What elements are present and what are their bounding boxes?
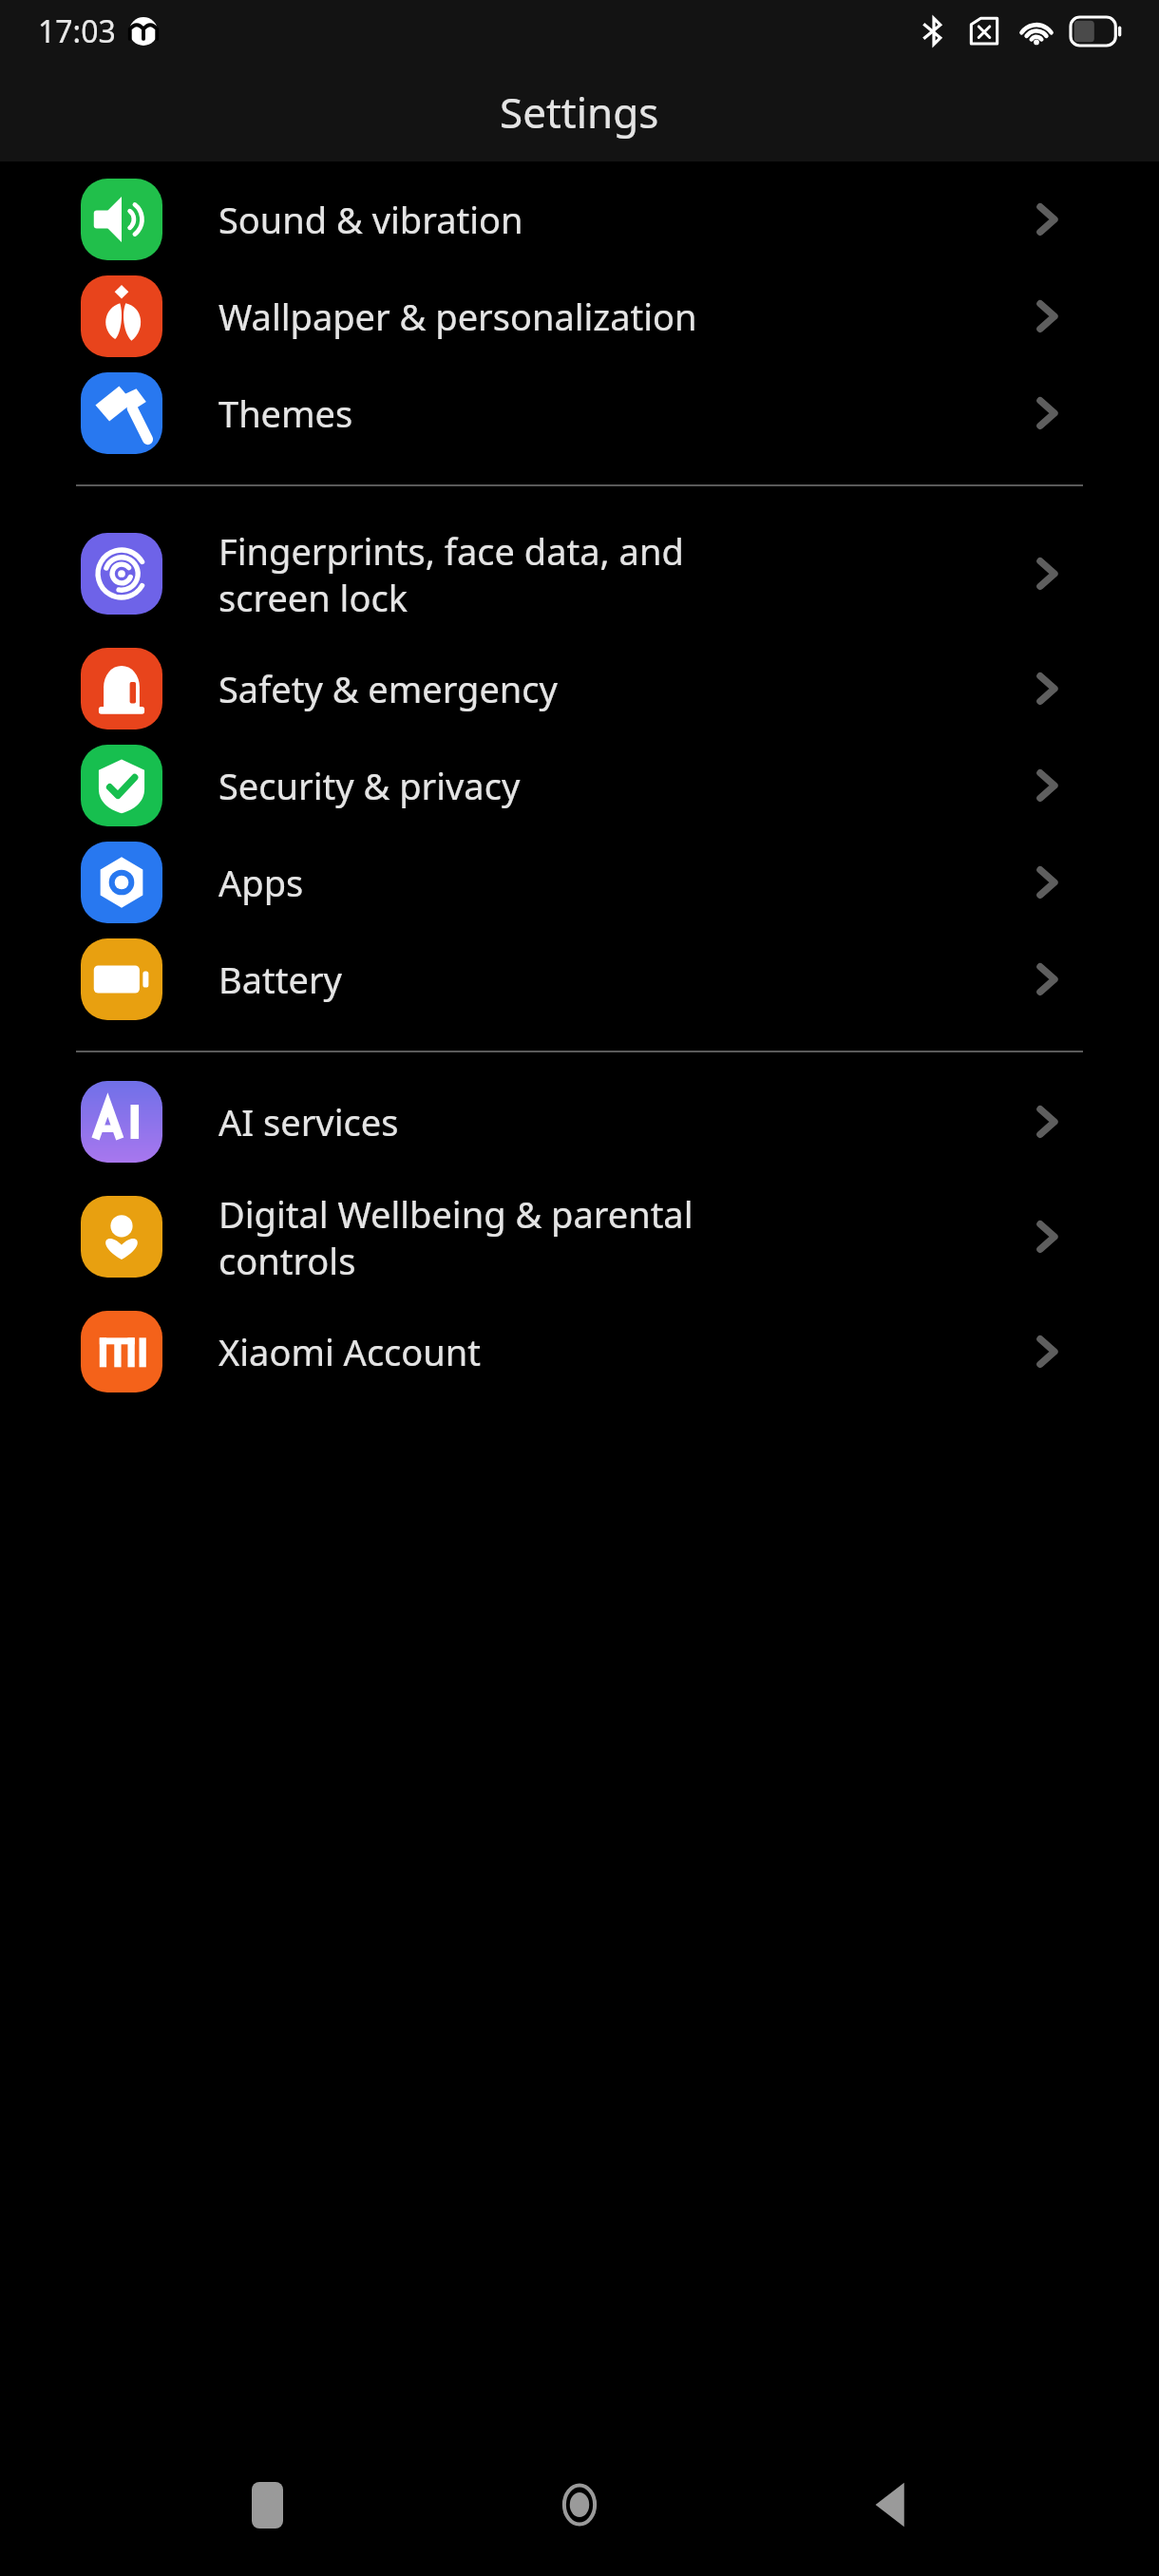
button[interactable]: Back <box>846 2459 938 2550</box>
staticText: Wallpaper & personalization <box>218 292 697 341</box>
button[interactable]: Home <box>534 2459 625 2550</box>
staticText: Sound & vibration <box>218 195 523 244</box>
button[interactable]: Fingerprints, face data, and screen lock <box>0 507 1159 640</box>
staticText: 17:03 <box>38 10 116 52</box>
staticText: Security & privacy <box>218 761 521 810</box>
button[interactable]: Battery <box>0 931 1159 1028</box>
staticText: Themes <box>218 388 353 438</box>
button[interactable]: Security & privacy <box>0 737 1159 834</box>
button[interactable]: Xiaomi Account <box>0 1303 1159 1400</box>
button[interactable]: Wallpaper & personalization <box>0 268 1159 365</box>
button[interactable]: Safety & emergency <box>0 640 1159 737</box>
button[interactable]: Digital Wellbeing & parental controls <box>0 1170 1159 1303</box>
staticText: Battery <box>218 955 342 1004</box>
staticText: Apps <box>218 858 304 907</box>
button[interactable]: Apps <box>0 834 1159 931</box>
staticText: Safety & emergency <box>218 664 558 713</box>
button[interactable]: AI services <box>0 1073 1159 1170</box>
button[interactable]: Sound & vibration <box>0 171 1159 268</box>
staticText: Digital Wellbeing & parental controls <box>218 1189 693 1285</box>
button[interactable]: Themes <box>0 365 1159 462</box>
staticText: Settings <box>500 84 659 141</box>
button[interactable]: Recent apps <box>221 2459 313 2550</box>
staticText: AI services <box>218 1097 399 1146</box>
staticText: Xiaomi Account <box>218 1327 482 1376</box>
staticText: Fingerprints, face data, and screen lock <box>218 526 684 622</box>
